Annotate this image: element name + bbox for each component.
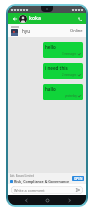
staticText: 2 messages	[62, 73, 77, 77]
button[interactable]: Write a comment	[11, 186, 83, 194]
button[interactable]: hyu	[8, 24, 86, 37]
staticText: Write a comment	[14, 188, 76, 193]
button[interactable]: Back	[22, 196, 30, 204]
staticText: OPEN	[74, 177, 83, 181]
staticText: hallo	[45, 86, 56, 92]
button[interactable]: Home	[43, 196, 51, 204]
staticText: i need this	[45, 65, 68, 71]
button[interactable]: Recent apps	[65, 196, 73, 204]
button[interactable]: hallo	[43, 84, 83, 100]
staticText: Risk, Compliance & Governance	[14, 179, 70, 184]
staticText: Online	[70, 28, 83, 33]
staticText: hyu	[22, 28, 31, 34]
button[interactable]: Back	[11, 15, 18, 22]
button[interactable]: Call	[76, 15, 83, 22]
button[interactable]: i need this	[43, 63, 83, 79]
staticText: hello	[45, 44, 56, 50]
other: Send	[76, 188, 80, 192]
button[interactable]: koka	[29, 15, 76, 22]
button[interactable]: hello	[43, 42, 83, 58]
staticText: koka	[29, 15, 41, 22]
button[interactable]: OPEN	[72, 176, 84, 181]
staticText: yesterday	[65, 94, 77, 98]
button[interactable]: Ads Baswal Limited	[8, 173, 86, 184]
staticText: Ads Baswal Limited	[10, 174, 35, 178]
button[interactable]: Profile photo	[19, 15, 27, 23]
staticText: 3 messages	[62, 52, 77, 56]
